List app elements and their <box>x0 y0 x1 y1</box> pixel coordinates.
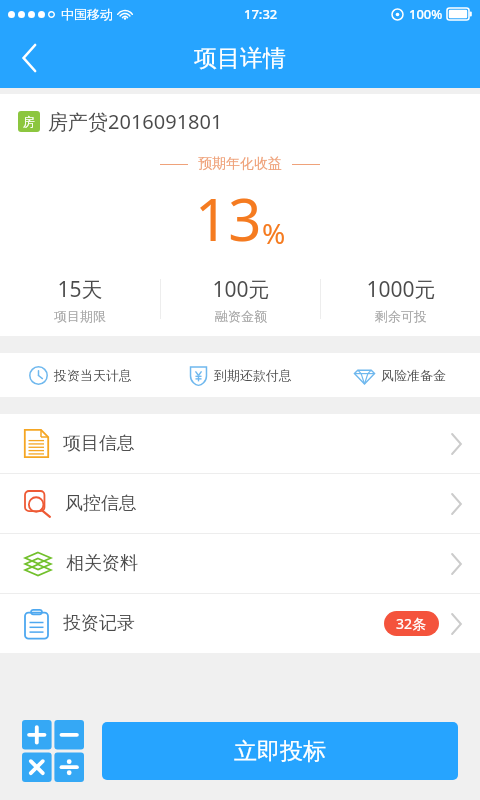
staticText: 13 <box>195 179 262 258</box>
button[interactable]: Calculator <box>22 720 84 782</box>
staticText: 100% <box>409 5 443 23</box>
staticText: 房 <box>23 114 35 129</box>
button[interactable]: 项目信息 <box>0 414 480 473</box>
staticText: 立即投标 <box>234 737 326 766</box>
staticText: 相关资料 <box>66 552 138 575</box>
button[interactable]: 投资当天计息 <box>0 353 160 397</box>
button[interactable]: 相关资料 <box>0 534 480 593</box>
staticText: 项目详情 <box>194 44 286 73</box>
button[interactable]: 投资记录 <box>0 594 480 653</box>
staticText: 100元 <box>212 275 270 304</box>
staticText: 投资记录 <box>63 612 135 635</box>
staticText: 15天 <box>57 275 103 304</box>
button[interactable]: 风控信息 <box>0 474 480 533</box>
staticText: 风险准备金 <box>381 367 446 383</box>
staticText: 项目期限 <box>54 308 106 324</box>
staticText: 17:32 <box>244 5 278 23</box>
staticText: 投资当天计息 <box>54 367 132 383</box>
staticText: 风控信息 <box>65 492 137 515</box>
staticText: 到期还款付息 <box>214 367 292 383</box>
button[interactable]: Back <box>4 32 56 84</box>
staticText: 32条 <box>396 614 427 633</box>
staticText: 房产贷2016091801 <box>48 108 223 135</box>
staticText: 融资金额 <box>215 308 267 324</box>
staticText: % <box>262 214 286 252</box>
staticText: 1000元 <box>366 275 436 304</box>
staticText: 剩余可投 <box>375 308 427 324</box>
button[interactable]: 立即投标 <box>102 722 458 780</box>
staticText: 预期年化收益 <box>198 155 282 173</box>
button[interactable]: 风险准备金 <box>320 353 480 397</box>
staticText: 中国移动 <box>61 6 113 22</box>
button[interactable]: 到期还款付息 <box>160 353 320 397</box>
staticText: 项目信息 <box>63 432 135 455</box>
